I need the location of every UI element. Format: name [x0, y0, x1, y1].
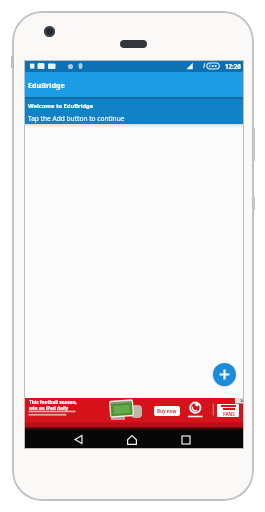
- button[interactable]: EduBridge: [24, 72, 244, 97]
- button[interactable]: [213, 363, 236, 386]
- button[interactable]: [176, 430, 195, 449]
- button[interactable]: [69, 430, 88, 449]
- button[interactable]: This football season,: [24, 398, 244, 427]
- staticText: Buy now: [157, 408, 177, 414]
- staticText: Welcome to EduBridge: [28, 102, 94, 110]
- staticText: win an iPad daily: [29, 405, 69, 411]
- staticText: FANS: [223, 411, 235, 417]
- button[interactable]: [122, 430, 141, 449]
- button[interactable]: Buy now: [154, 406, 180, 416]
- button[interactable]: Welcome to EduBridge: [24, 99, 244, 124]
- staticText: This football season,: [29, 399, 77, 405]
- staticText: 12:26: [225, 62, 241, 70]
- staticText: EduBridge: [28, 80, 65, 90]
- staticText: Tap the Add button to continue: [28, 114, 125, 123]
